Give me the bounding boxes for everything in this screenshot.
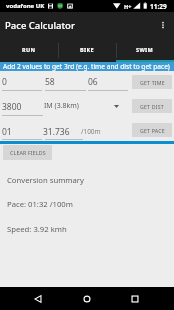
button[interactable]: GET PACE <box>132 123 172 137</box>
button[interactable]: BIKE <box>58 38 116 62</box>
staticText: Speed: 3.92 kmh <box>7 224 67 234</box>
staticText: Conversion summary <box>7 175 84 185</box>
button[interactable]: RUN <box>0 38 58 62</box>
staticText: 01 <box>2 126 12 138</box>
staticText: /100m <box>81 127 101 136</box>
staticText: 06 <box>88 76 98 88</box>
staticText: BIKE <box>80 46 94 53</box>
staticText: RUN <box>22 46 36 53</box>
button[interactable]: Home <box>76 288 98 310</box>
button[interactable]: CLEAR FIELDS <box>3 145 52 160</box>
staticText: 0 <box>2 76 7 88</box>
button[interactable]: Back <box>27 288 49 310</box>
button[interactable]: Recents <box>124 288 146 310</box>
staticText: Add 2 values to get 3rd (e.g. time and d… <box>3 62 170 71</box>
staticText: SWIM <box>136 46 154 53</box>
button[interactable]: Select distance <box>110 100 122 112</box>
staticText: GET PACE <box>140 127 165 134</box>
staticText: 11:29 <box>150 2 167 11</box>
staticText: IM (3.8km) <box>44 101 79 111</box>
staticText: H+ <box>124 3 132 10</box>
staticText: Pace: 01:32 /100m <box>7 199 73 209</box>
staticText: GET DIST <box>140 103 164 110</box>
button[interactable]: GET TIME <box>132 75 172 89</box>
staticText: 3800 <box>2 101 22 113</box>
staticText: CLEAR FIELDS <box>10 149 46 156</box>
button[interactable]: More options <box>155 17 171 33</box>
staticText: vodafone UK <box>6 2 45 10</box>
staticText: 31.736 <box>43 126 70 138</box>
button[interactable]: SWIM <box>116 38 174 62</box>
button[interactable]: GET DIST <box>132 99 172 113</box>
staticText: Pace Calculator <box>5 19 75 32</box>
staticText: 58 <box>45 76 55 88</box>
staticText: GET TIME <box>140 79 165 86</box>
